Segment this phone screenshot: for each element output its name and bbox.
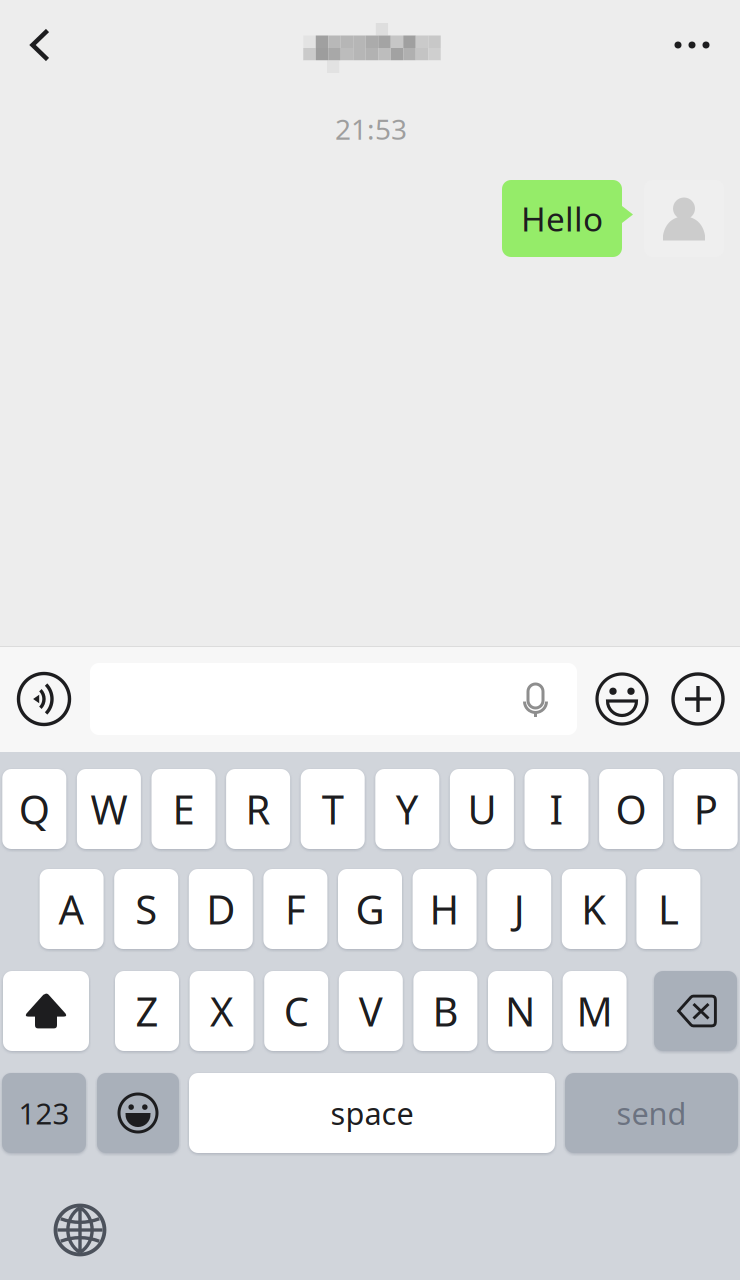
button[interactable]: W — [77, 769, 141, 849]
button[interactable]: E — [151, 769, 215, 849]
staticText: Hello — [521, 196, 603, 241]
button[interactable]: M — [563, 971, 627, 1051]
button[interactable]: H — [413, 869, 477, 949]
staticText: J — [514, 882, 525, 935]
staticText: K — [581, 882, 606, 935]
button[interactable]: G — [338, 869, 402, 949]
staticText: U — [467, 782, 496, 835]
staticText: B — [432, 984, 458, 1037]
button[interactable]: F — [263, 869, 327, 949]
button[interactable]: Voice message — [10, 665, 78, 733]
button[interactable] — [565, 1073, 738, 1153]
staticText: S — [135, 882, 157, 935]
button[interactable]: T — [301, 769, 365, 849]
staticText: 21:53 — [335, 110, 407, 148]
staticText: H — [430, 882, 460, 935]
button[interactable]: Shift — [3, 971, 89, 1051]
button[interactable]: I — [524, 769, 588, 849]
staticText: N — [505, 984, 535, 1037]
staticText: G — [355, 882, 384, 935]
staticText: P — [694, 782, 718, 835]
staticText: E — [172, 782, 194, 835]
staticText: L — [658, 882, 679, 935]
staticText: Y — [396, 782, 419, 835]
staticText: I — [549, 782, 563, 835]
staticText: V — [359, 984, 383, 1037]
button[interactable]: B — [413, 971, 477, 1051]
button[interactable]: N — [488, 971, 552, 1051]
button[interactable]: J — [487, 869, 551, 949]
staticText: X — [210, 984, 233, 1037]
staticText: space — [330, 1093, 413, 1133]
staticText: Q — [19, 782, 50, 835]
button[interactable]: Emoji keyboard — [97, 1073, 179, 1153]
button[interactable]: Y — [375, 769, 439, 849]
button[interactable]: More — [652, 5, 732, 85]
button[interactable]: A — [40, 869, 104, 949]
staticText: F — [285, 882, 306, 935]
staticText: D — [206, 882, 235, 935]
staticText: T — [322, 782, 344, 835]
staticText: send — [616, 1093, 686, 1133]
button[interactable]: U — [450, 769, 514, 849]
staticText: M — [577, 984, 613, 1037]
staticText: W — [90, 782, 127, 835]
button[interactable]: Back — [0, 5, 80, 85]
button[interactable]: P — [674, 769, 738, 849]
button[interactable]: Add attachment — [664, 665, 732, 733]
staticText: O — [616, 782, 647, 835]
button[interactable] — [189, 1073, 555, 1153]
button[interactable]: V — [339, 971, 403, 1051]
staticText: Z — [135, 984, 158, 1037]
button[interactable]: O — [599, 769, 663, 849]
staticText: 123 — [18, 1093, 69, 1132]
button[interactable]: S — [114, 869, 178, 949]
button[interactable]: L — [636, 869, 700, 949]
button[interactable]: Z — [115, 971, 179, 1051]
staticText: R — [246, 782, 271, 835]
button[interactable]: Q — [2, 769, 66, 849]
button[interactable]: K — [562, 869, 626, 949]
button[interactable]: R — [226, 769, 290, 849]
button[interactable]: C — [264, 971, 328, 1051]
staticText: A — [59, 882, 85, 935]
button[interactable]: Next keyboard — [50, 1202, 110, 1258]
button[interactable]: Emoji — [588, 665, 656, 733]
button[interactable]: D — [189, 869, 253, 949]
staticText: C — [284, 984, 309, 1037]
button[interactable] — [2, 1073, 86, 1153]
button[interactable]: X — [190, 971, 254, 1051]
button[interactable]: Delete — [654, 971, 737, 1051]
